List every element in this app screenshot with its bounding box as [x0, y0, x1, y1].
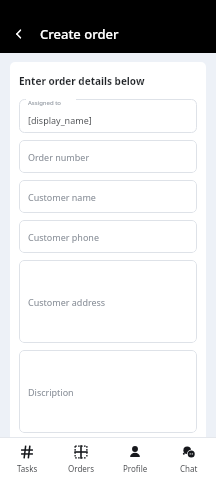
staticText: Orders	[68, 463, 94, 474]
button[interactable]: Chat	[162, 440, 216, 478]
button[interactable]: Customer phone	[19, 220, 197, 253]
button[interactable]: Customer address	[19, 260, 197, 343]
staticText: Enter order details below	[19, 74, 145, 88]
button[interactable]: Customer name	[19, 180, 197, 213]
staticText: Customer phone	[28, 231, 99, 243]
staticText: Order number	[28, 151, 90, 163]
staticText: Customer name	[28, 191, 96, 203]
button[interactable]: Profile	[108, 440, 162, 478]
staticText: Assigned to	[28, 99, 61, 107]
button[interactable]: Orders	[54, 440, 108, 478]
staticText: Customer address	[28, 296, 106, 308]
staticText: Tasks	[17, 463, 38, 474]
staticText: Create order	[40, 25, 119, 43]
button[interactable]: Back	[8, 23, 30, 45]
staticText: [display_name]	[28, 114, 92, 126]
button[interactable]: Tasks	[0, 440, 54, 478]
staticText: Chat	[180, 463, 198, 474]
button[interactable]: Order number	[19, 140, 197, 173]
button[interactable]: Assigned to	[19, 99, 197, 133]
staticText: Profile	[123, 463, 148, 474]
staticText: Discription	[28, 386, 74, 398]
button[interactable]: Discription	[19, 350, 197, 433]
